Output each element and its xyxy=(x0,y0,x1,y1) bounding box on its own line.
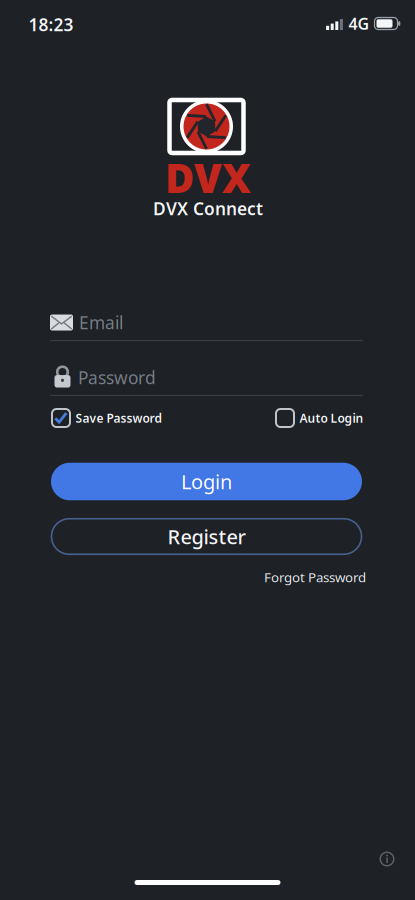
staticText: Login xyxy=(181,468,232,495)
staticText: Password xyxy=(78,366,156,389)
button[interactable]: Register xyxy=(51,518,362,554)
button[interactable]: Auto Login xyxy=(275,408,363,427)
staticText: Auto Login xyxy=(299,410,363,426)
button[interactable]: Info xyxy=(379,851,395,867)
button[interactable]: Login xyxy=(51,463,362,500)
staticText: 4G xyxy=(348,13,369,34)
button[interactable]: Password xyxy=(50,363,363,391)
staticText: 18:23 xyxy=(28,13,73,36)
button[interactable]: Forgot Password xyxy=(264,568,366,586)
button[interactable]: Email xyxy=(50,309,363,335)
staticText: Register xyxy=(167,523,245,550)
button[interactable]: Save Password xyxy=(51,408,162,427)
staticText: DVX Connect xyxy=(153,197,263,220)
staticText: Email xyxy=(79,311,123,334)
staticText: Forgot Password xyxy=(264,568,366,586)
staticText: Save Password xyxy=(75,410,162,426)
staticText: DVX xyxy=(165,151,251,204)
